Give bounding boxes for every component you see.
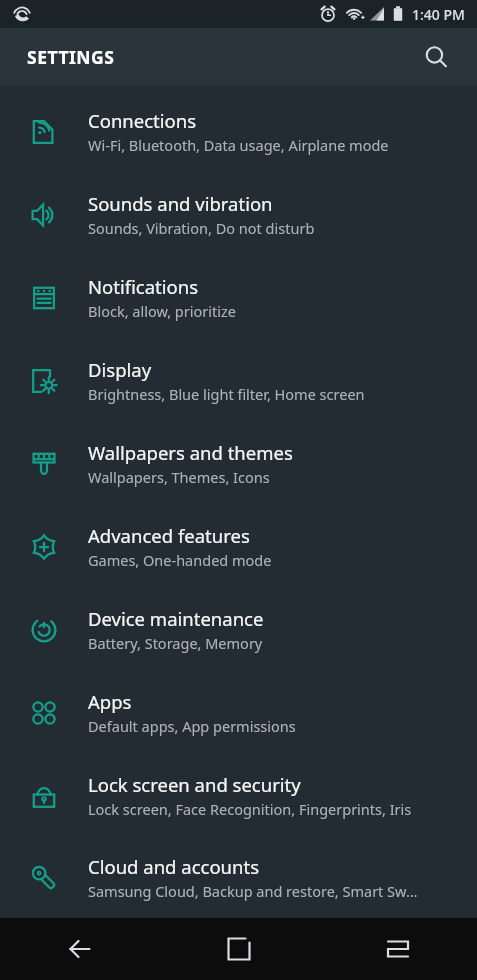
staticText: Default apps, App permissions xyxy=(88,716,296,736)
staticText: Connections xyxy=(88,108,197,133)
staticText: Cloud and accounts xyxy=(88,854,260,879)
button[interactable]: Connections xyxy=(0,90,477,173)
button[interactable]: Device maintenance xyxy=(0,588,477,671)
staticText: Wi-Fi, Bluetooth, Data usage, Airplane m… xyxy=(88,135,389,155)
button[interactable]: Sounds and vibration xyxy=(0,173,477,256)
button[interactable]: Lock screen and security xyxy=(0,754,477,837)
staticText: Sounds and vibration xyxy=(88,191,273,216)
staticText: 1:40 PM xyxy=(412,5,465,24)
button[interactable]: Home xyxy=(159,918,318,980)
staticText: Wallpapers, Themes, Icons xyxy=(88,467,270,487)
staticText: Lock screen, Face Recognition, Fingerpri… xyxy=(88,799,412,819)
staticText: SETTINGS xyxy=(27,45,115,69)
button[interactable]: Search xyxy=(415,36,457,78)
button[interactable]: Back xyxy=(0,918,159,980)
staticText: Display xyxy=(88,357,152,382)
button[interactable]: Display xyxy=(0,339,477,422)
staticText: Advanced features xyxy=(88,523,250,548)
staticText: Wallpapers and themes xyxy=(88,440,293,465)
staticText: Apps xyxy=(88,689,132,714)
staticText: Notifications xyxy=(88,274,199,299)
button[interactable]: Cloud and accounts xyxy=(0,837,477,918)
staticText: Battery, Storage, Memory xyxy=(88,633,263,653)
staticText: Samsung Cloud, Backup and restore, Smart… xyxy=(88,881,418,901)
staticText: Games, One-handed mode xyxy=(88,550,272,570)
staticText: Block, allow, prioritize xyxy=(88,301,236,321)
staticText: Sounds, Vibration, Do not disturb xyxy=(88,218,315,238)
button[interactable]: Recents xyxy=(318,918,477,980)
button[interactable]: Advanced features xyxy=(0,505,477,588)
button[interactable]: Notifications xyxy=(0,256,477,339)
staticText: Brightness, Blue light filter, Home scre… xyxy=(88,384,365,404)
staticText: Device maintenance xyxy=(88,606,264,631)
button[interactable]: Apps xyxy=(0,671,477,754)
staticText: Lock screen and security xyxy=(88,772,301,797)
button[interactable]: Wallpapers and themes xyxy=(0,422,477,505)
